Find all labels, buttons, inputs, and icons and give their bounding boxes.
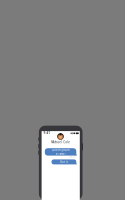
staticText: Delivered xyxy=(69,156,76,158)
staticText: Got it xyxy=(60,160,68,164)
staticText: Michael Cole xyxy=(51,140,70,144)
staticText: sit amet xyxy=(55,152,65,155)
staticText: 9:41 xyxy=(43,131,50,135)
button[interactable]: Michael Cole xyxy=(42,141,80,144)
staticText: Lorem ipsum xyxy=(52,148,69,152)
